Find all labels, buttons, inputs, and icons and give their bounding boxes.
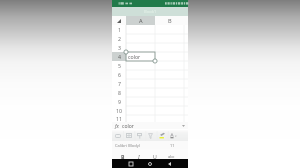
staticText: Book1 (144, 9, 157, 15)
button[interactable]: B (155, 16, 184, 25)
button[interactable]: 7 (112, 79, 126, 88)
button[interactable]: Select all cells (112, 16, 126, 25)
button[interactable]: Strikethrough (163, 151, 179, 161)
staticText: fx (115, 123, 119, 129)
button[interactable]: Home (141, 159, 159, 168)
button[interactable]: A (126, 16, 155, 25)
button[interactable]: 4 (112, 52, 126, 61)
button[interactable]: Merge cells (112, 130, 123, 141)
button[interactable]: 1 (112, 25, 126, 34)
staticText: 9 (118, 98, 121, 105)
staticText: color (128, 53, 141, 60)
button[interactable]: color (126, 52, 155, 61)
staticText: 1 (118, 26, 121, 33)
button[interactable]: Font colour (168, 130, 179, 141)
staticText: 4 (118, 53, 121, 60)
button[interactable]: 10 (112, 106, 126, 115)
button[interactable]: Back (160, 159, 178, 168)
button[interactable]: 9 (112, 97, 126, 106)
button[interactable]: 2 (112, 34, 126, 43)
staticText: 2 (118, 35, 121, 42)
staticText: abc (168, 154, 175, 159)
staticText: I (138, 153, 140, 160)
button[interactable]: Italic (131, 151, 147, 161)
button[interactable]: 11 (112, 115, 126, 122)
staticText: 5 (118, 62, 121, 69)
button[interactable]: Filter (145, 130, 156, 141)
button[interactable]: 8 (112, 88, 126, 97)
staticText: 11 (170, 143, 175, 148)
button[interactable]: Format painter (134, 130, 145, 141)
staticText: B (168, 17, 172, 25)
staticText: 8 (118, 89, 121, 96)
button[interactable]: 6 (112, 70, 126, 79)
staticText: 11 (116, 115, 122, 122)
staticText: B (121, 153, 125, 160)
staticText: 3 (118, 44, 121, 51)
staticText: A (139, 17, 143, 25)
button[interactable]: Calibri (Body) (115, 142, 145, 149)
button[interactable]: Underline (147, 151, 163, 161)
button[interactable]: 5 (112, 61, 126, 70)
button[interactable]: Bold (115, 151, 131, 161)
staticText: U (153, 153, 157, 160)
staticText: 10 (116, 107, 122, 114)
button[interactable]: 11 (166, 142, 178, 149)
button[interactable]: Recent apps (122, 159, 140, 168)
button[interactable]: Borders (123, 130, 134, 141)
staticText: color (122, 123, 134, 130)
button[interactable]: Highlight colour (156, 130, 167, 141)
staticText: 6 (118, 71, 121, 78)
staticText: 7 (118, 80, 121, 87)
staticText: Calibri (Body) (115, 143, 140, 148)
button[interactable]: 3 (112, 43, 126, 52)
